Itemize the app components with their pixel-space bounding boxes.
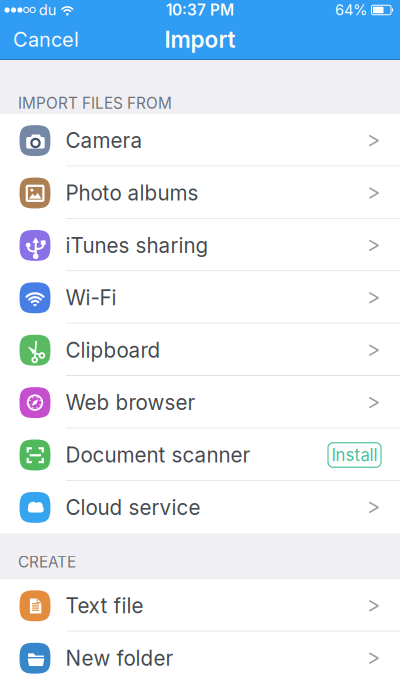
- button[interactable]: Photo albums: [0, 166, 400, 219]
- staticText: du: [39, 1, 57, 19]
- button[interactable]: New folder: [0, 632, 400, 682]
- staticText: New folder: [65, 646, 173, 671]
- button[interactable]: Install: [328, 443, 381, 467]
- staticText: Document scanner: [65, 442, 250, 467]
- staticText: Cloud service: [65, 495, 200, 520]
- button[interactable]: Cloud service: [0, 481, 400, 533]
- staticText: Install: [331, 445, 377, 465]
- button[interactable]: Clipboard: [0, 324, 400, 376]
- button[interactable]: Camera: [0, 114, 400, 166]
- staticText: 10:37 PM: [166, 1, 234, 19]
- staticText: CREATE: [18, 553, 76, 571]
- staticText: Import: [164, 26, 235, 53]
- staticText: Camera: [65, 128, 142, 153]
- staticText: Cancel: [13, 27, 79, 52]
- button[interactable]: iTunes sharing: [0, 219, 400, 271]
- button[interactable]: Wi-Fi: [0, 271, 400, 324]
- staticText: iTunes sharing: [65, 233, 208, 258]
- staticText: Text file: [65, 593, 143, 618]
- staticText: Clipboard: [65, 338, 160, 363]
- staticText: 64%: [335, 1, 367, 19]
- staticText: IMPORT FILES FROM: [18, 94, 172, 112]
- button[interactable]: Cancel: [13, 27, 79, 52]
- staticText: Wi-Fi: [65, 285, 116, 310]
- staticText: Web browser: [65, 390, 195, 415]
- staticText: Photo albums: [65, 180, 198, 205]
- button[interactable]: Document scanner: [0, 428, 400, 481]
- button[interactable]: Text file: [0, 579, 400, 632]
- button[interactable]: Web browser: [0, 376, 400, 428]
